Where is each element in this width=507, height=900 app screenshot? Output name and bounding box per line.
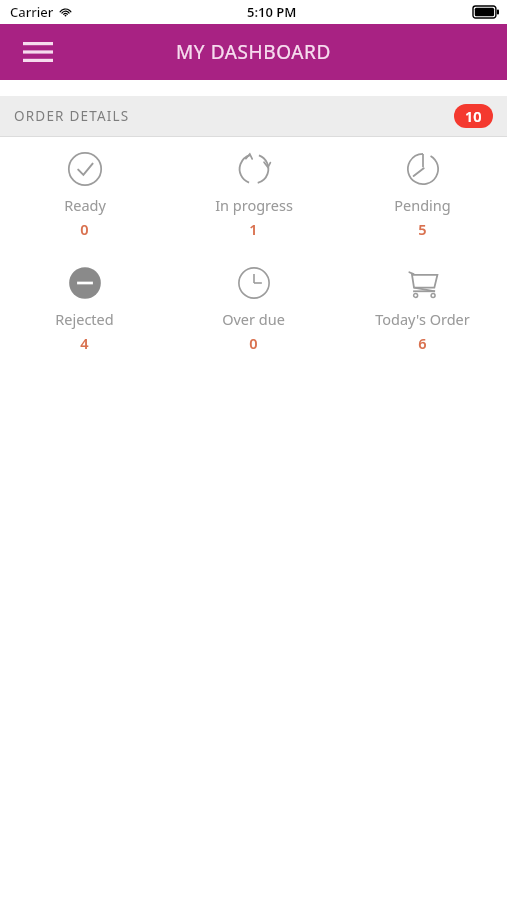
button[interactable]: Over due	[169, 261, 338, 357]
staticText: 1	[249, 219, 258, 239]
button[interactable]: In progress	[169, 147, 338, 243]
staticText: 4	[80, 333, 89, 353]
staticText: In progress	[215, 195, 293, 215]
staticText: 5:10 PM	[247, 3, 297, 21]
button[interactable]: Open navigation menu	[14, 28, 62, 76]
staticText: 0	[80, 219, 89, 239]
button[interactable]: ORDER DETAILS	[0, 96, 507, 136]
staticText: 0	[249, 333, 258, 353]
staticText: Over due	[222, 309, 285, 329]
staticText: Rejected	[55, 309, 114, 329]
button[interactable]: Pending	[338, 147, 507, 243]
staticText: 5	[418, 219, 427, 239]
staticText: Ready	[64, 195, 106, 215]
staticText: Today's Order	[375, 309, 470, 329]
staticText: 10	[465, 106, 482, 126]
staticText: ORDER DETAILS	[14, 107, 130, 125]
button[interactable]: Today's Order	[338, 261, 507, 357]
staticText: MY DASHBOARD	[176, 39, 331, 65]
staticText: Pending	[394, 195, 451, 215]
staticText: Carrier	[10, 3, 54, 21]
staticText: 6	[418, 333, 427, 353]
button[interactable]: Ready	[0, 147, 169, 243]
button[interactable]: Rejected	[0, 261, 169, 357]
